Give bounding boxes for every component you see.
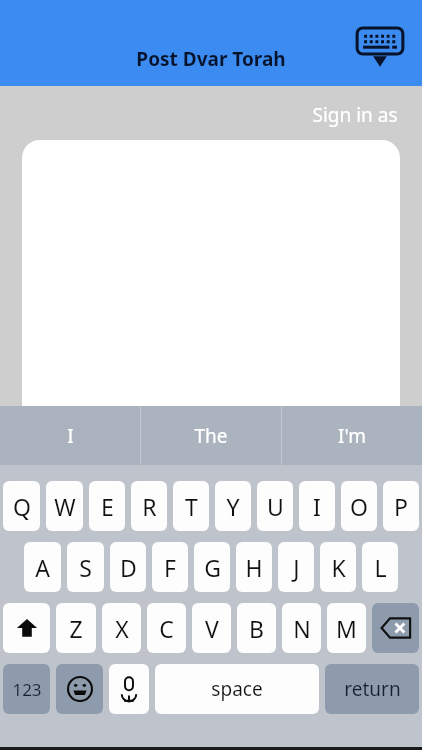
staticText: T	[185, 491, 198, 522]
button[interactable]: K	[320, 542, 356, 592]
staticText: return	[344, 676, 401, 702]
staticText: space	[211, 676, 263, 702]
button[interactable]: E	[89, 481, 125, 531]
button[interactable]: space	[155, 664, 319, 714]
button[interactable]: I'm	[282, 406, 422, 465]
staticText: The	[194, 423, 228, 449]
button[interactable]: F	[152, 542, 188, 592]
staticText: P	[394, 491, 408, 522]
button[interactable]: Z	[56, 603, 96, 653]
staticText: X	[115, 613, 129, 644]
button[interactable]: P	[383, 481, 419, 531]
button[interactable]: W	[46, 481, 83, 531]
staticText: L	[374, 552, 387, 583]
staticText: G	[204, 552, 221, 583]
staticText: V	[205, 613, 219, 644]
button[interactable]: B	[237, 603, 276, 653]
staticText: N	[293, 613, 311, 644]
button[interactable]: Sign in as	[312, 102, 398, 128]
staticText: Y	[226, 491, 240, 522]
button[interactable]: Q	[3, 481, 40, 531]
button[interactable]: 123	[3, 664, 50, 714]
button[interactable]: The	[141, 406, 281, 465]
button[interactable]: V	[192, 603, 231, 653]
button[interactable]: R	[131, 481, 167, 531]
button[interactable]: I	[0, 406, 140, 465]
button[interactable]: Emoji	[56, 664, 103, 714]
staticText: 123	[12, 678, 42, 701]
button[interactable]: Post Dvar Torah	[136, 46, 286, 72]
button[interactable]: G	[194, 542, 230, 592]
button[interactable]: I	[299, 481, 335, 531]
staticText: D	[120, 552, 137, 583]
staticText: C	[159, 613, 174, 644]
staticText: B	[249, 613, 264, 644]
staticText: O	[350, 491, 368, 522]
staticText: Z	[69, 613, 83, 644]
button[interactable]: return	[325, 664, 419, 714]
button[interactable]: Delete	[372, 603, 419, 653]
button[interactable]: L	[362, 542, 398, 592]
staticText: I	[67, 423, 74, 449]
button[interactable]: S	[67, 542, 104, 592]
button[interactable]: A	[24, 542, 61, 592]
button[interactable]: T	[173, 481, 209, 531]
button[interactable]: U	[257, 481, 293, 531]
staticText: K	[331, 552, 346, 583]
staticText: I'm	[338, 423, 366, 449]
button[interactable]: Y	[215, 481, 251, 531]
staticText: R	[142, 491, 157, 522]
button[interactable]: C	[147, 603, 186, 653]
staticText: A	[35, 552, 50, 583]
staticText: M	[336, 613, 357, 644]
button[interactable]: Voice input	[109, 664, 149, 714]
staticText: I	[313, 491, 321, 522]
staticText: F	[164, 552, 176, 583]
staticText: J	[293, 552, 300, 583]
button[interactable]: O	[341, 481, 377, 531]
button[interactable]: Hide keyboard	[352, 26, 408, 72]
staticText: E	[101, 491, 114, 522]
button[interactable]: J	[278, 542, 314, 592]
staticText: H	[245, 552, 263, 583]
staticText: W	[54, 491, 76, 522]
button[interactable]: Shift	[3, 603, 50, 653]
button[interactable]: X	[102, 603, 141, 653]
staticText: Post Dvar Torah	[136, 46, 286, 72]
staticText: S	[79, 552, 92, 583]
button[interactable]: D	[110, 542, 146, 592]
staticText: Sign in as	[312, 102, 398, 128]
button[interactable]: M	[327, 603, 366, 653]
button[interactable]: H	[236, 542, 272, 592]
staticText: U	[267, 491, 284, 522]
staticText: Q	[13, 491, 31, 522]
button[interactable]: N	[282, 603, 321, 653]
